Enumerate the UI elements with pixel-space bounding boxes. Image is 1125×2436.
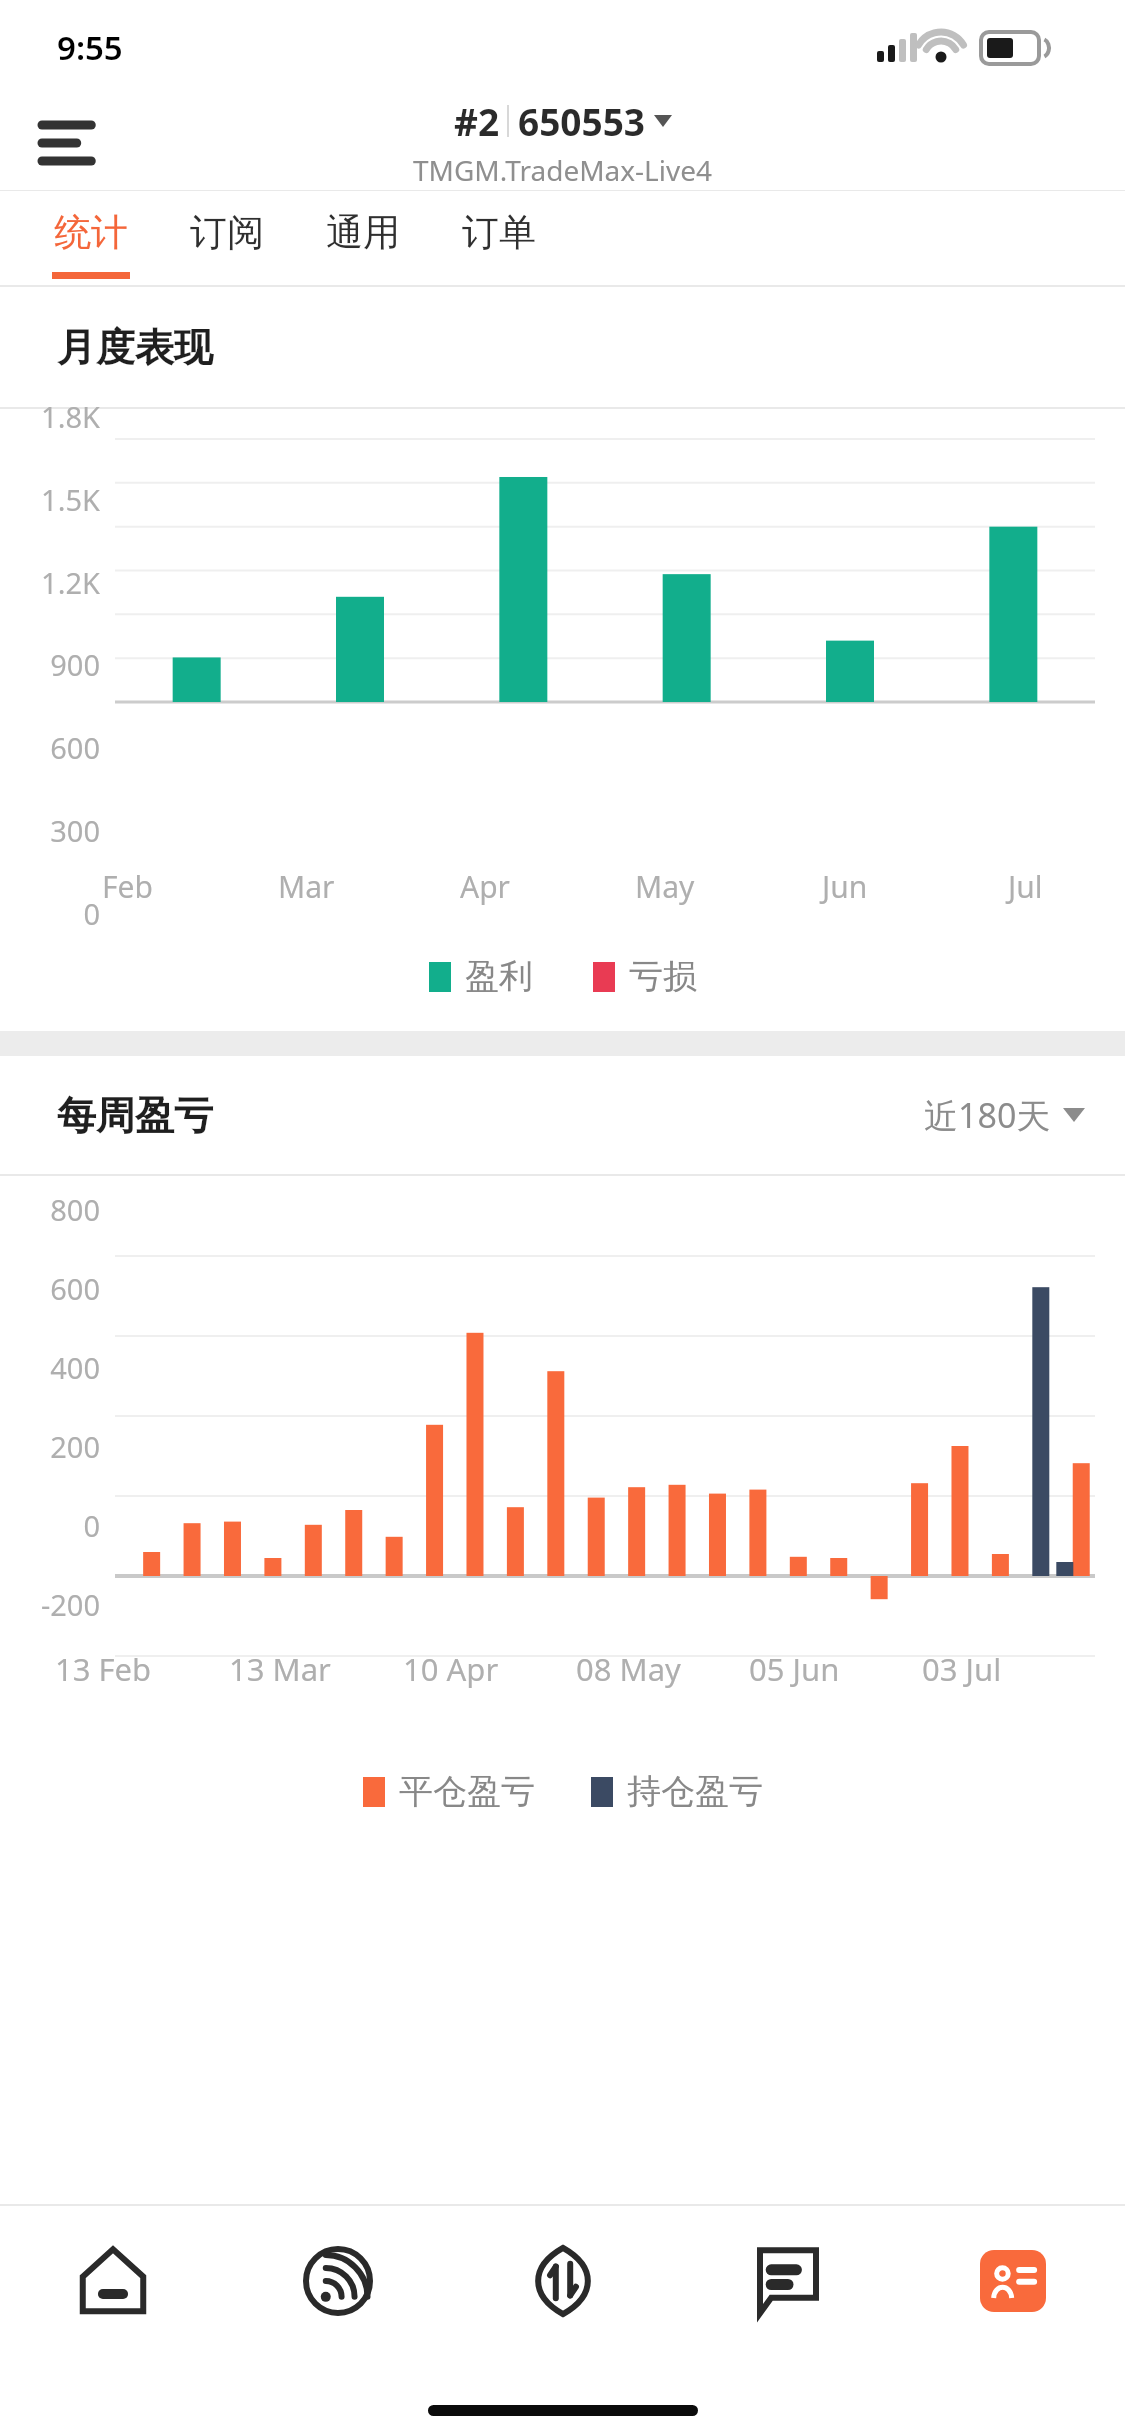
staticText: 03 Jul (922, 1648, 1002, 1690)
staticText: 盈利 (465, 955, 533, 998)
staticText: 统计 (54, 209, 128, 256)
button[interactable]: 平仓盈亏 (0, 1736, 1125, 1846)
staticText: 300 (0, 811, 100, 850)
button[interactable]: 订单 (438, 191, 560, 285)
staticText: 每周盈亏 (57, 1091, 213, 1140)
staticText: 9:55 (57, 25, 123, 70)
button[interactable]: Menu (30, 103, 110, 183)
staticText: Feb (102, 866, 153, 907)
staticText: 亏损 (629, 955, 697, 998)
staticText: 650553 (518, 96, 645, 146)
staticText: 400 (0, 1348, 100, 1387)
button[interactable]: Transfer (450, 2206, 675, 2356)
staticText: 800 (0, 1190, 100, 1229)
button[interactable]: 订阅 (166, 191, 288, 285)
staticText: 900 (0, 645, 100, 684)
staticText: 1.8K (0, 397, 100, 436)
button[interactable]: Profile (900, 2206, 1125, 2356)
staticText: 月度表现 (57, 323, 213, 372)
staticText: 0 (0, 1506, 100, 1545)
staticText: #2 (454, 96, 500, 146)
staticText: Apr (460, 866, 511, 907)
staticText: 通用 (326, 209, 400, 256)
staticText: Jun (822, 866, 868, 907)
staticText: 1.5K (0, 480, 100, 519)
button[interactable]: Messages (675, 2206, 900, 2356)
button[interactable]: 通用 (302, 191, 424, 285)
staticText: 13 Mar (229, 1648, 331, 1690)
staticText: 持仓盈亏 (627, 1770, 763, 1813)
staticText: 订阅 (190, 209, 264, 256)
staticText: Jul (1008, 866, 1043, 907)
staticText: 05 Jun (749, 1648, 840, 1690)
staticText: 1.2K (0, 563, 100, 602)
staticText: 10 Apr (403, 1648, 499, 1690)
staticText: 平仓盈亏 (399, 1770, 535, 1813)
button[interactable]: Signals (225, 2206, 450, 2356)
staticText: 0 (0, 894, 100, 933)
staticText: 600 (0, 1269, 100, 1308)
staticText: 13 Feb (55, 1648, 152, 1690)
button[interactable]: 统计 (30, 191, 152, 285)
staticText: May (635, 866, 695, 907)
button[interactable]: #2 (413, 96, 713, 189)
staticText: 200 (0, 1427, 100, 1466)
staticText: 08 May (576, 1648, 681, 1690)
staticText: 近180天 (924, 1092, 1051, 1138)
button[interactable]: 盈利 (0, 921, 1125, 1031)
staticText: TMGM.TradeMax-Live4 (413, 151, 713, 189)
button[interactable]: 近180天 (924, 1092, 1085, 1138)
staticText: Mar (278, 866, 335, 907)
button[interactable]: Home (0, 2206, 225, 2356)
staticText: -200 (0, 1585, 100, 1624)
staticText: 600 (0, 728, 100, 767)
staticText: 订单 (462, 209, 536, 256)
